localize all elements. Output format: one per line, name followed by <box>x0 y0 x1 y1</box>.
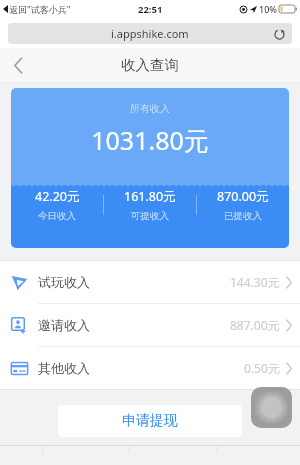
staticText: 收入查询 <box>121 56 179 74</box>
button[interactable]: Back <box>4 51 32 79</box>
staticText: 已提收入 <box>224 210 262 222</box>
button[interactable]: 161.80元 <box>104 188 196 222</box>
staticText: 可提收入 <box>131 210 169 222</box>
button[interactable]: AssistiveTouch <box>251 387 292 428</box>
staticText: 887.00元 <box>230 317 280 333</box>
staticText: 42.20元 <box>35 188 80 205</box>
staticText: 10% <box>259 3 277 15</box>
staticText: 161.80元 <box>124 188 176 205</box>
button[interactable]: Reload <box>272 27 286 41</box>
staticText: 返回"试客小兵" <box>9 3 71 15</box>
staticText: 所有收入 <box>11 102 289 115</box>
staticText: 0.50元 <box>244 360 280 376</box>
staticText: 870.00元 <box>217 188 269 205</box>
staticText: 试玩收入 <box>38 274 90 290</box>
button[interactable]: 870.00元 <box>197 188 289 222</box>
button[interactable]: 邀请收入 <box>0 304 300 346</box>
button[interactable]: 申请提现 <box>58 405 242 437</box>
button[interactable]: i.appshike.com <box>8 23 292 44</box>
staticText: 申请提现 <box>122 412 178 430</box>
staticText: 1031.80元 <box>11 123 289 157</box>
staticText: 邀请收入 <box>38 317 90 333</box>
button[interactable]: 其他收入 <box>0 347 300 389</box>
button[interactable]: 试玩收入 <box>0 261 300 303</box>
staticText: i.appshike.com <box>111 26 189 41</box>
staticText: 其他收入 <box>38 360 90 376</box>
staticText: 144.30元 <box>230 274 280 290</box>
button[interactable]: 42.20元 <box>11 188 103 222</box>
staticText: 今日收入 <box>38 210 76 222</box>
staticText: 22:51 <box>138 3 163 16</box>
